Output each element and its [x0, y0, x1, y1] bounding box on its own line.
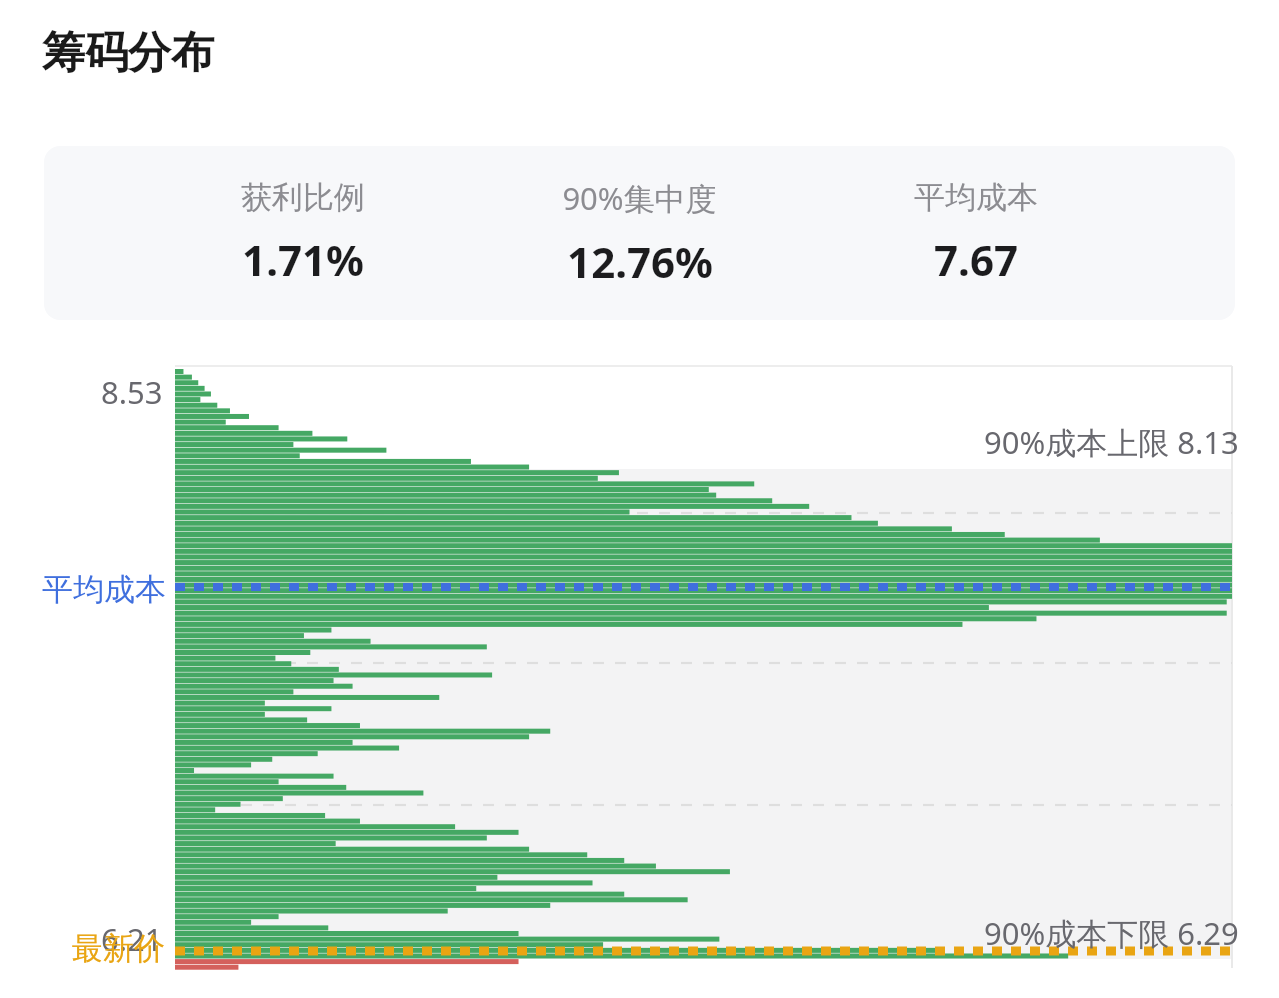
staticText: 8.53: [101, 371, 163, 413]
staticText: 90%集中度: [562, 177, 717, 219]
staticText: 1.71%: [242, 231, 364, 288]
staticText: 最新价: [72, 929, 165, 968]
button[interactable]: 平均成本: [914, 178, 1038, 288]
staticText: 90%成本上限 8.13: [984, 421, 1239, 463]
other: 筹码分布图: [0, 0, 1279, 998]
staticText: 平均成本: [914, 178, 1038, 217]
staticText: 获利比例: [241, 178, 365, 217]
staticText: 6.21: [101, 918, 163, 960]
staticText: 90%成本下限 6.29: [984, 912, 1239, 954]
staticText: 7.67: [934, 231, 1018, 288]
button[interactable]: 获利比例: [241, 178, 365, 288]
staticText: 筹码分布: [42, 26, 214, 80]
button[interactable]: 获利比例: [44, 146, 1235, 320]
staticText: 12.76%: [567, 233, 713, 290]
staticText: 平均成本: [42, 570, 166, 609]
button[interactable]: 90%集中度: [562, 177, 717, 290]
